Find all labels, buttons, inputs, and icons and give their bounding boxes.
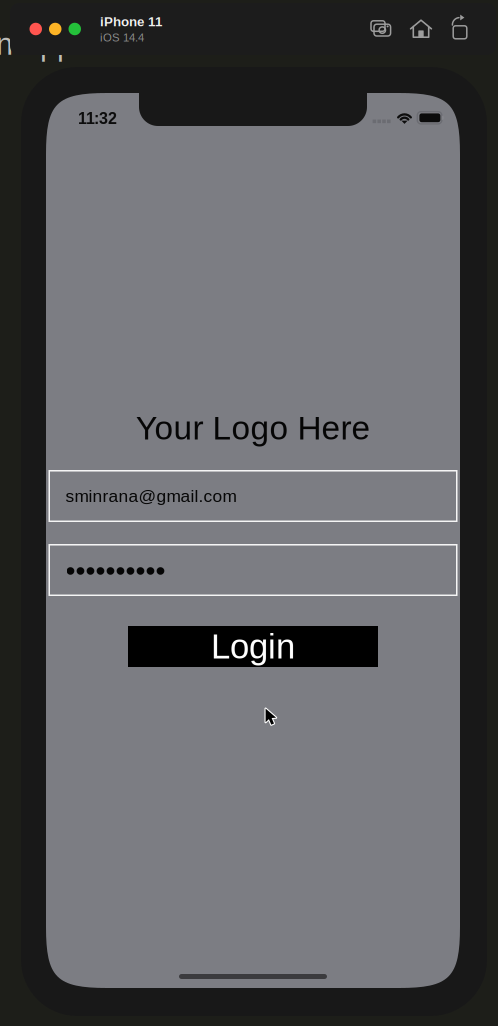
button[interactable]: Minimize window [49, 23, 61, 35]
button[interactable]: •••••••••• [48, 544, 457, 596]
staticText: Your Logo Here [135, 409, 370, 447]
button[interactable]: Rotate Device [448, 17, 472, 41]
staticText: 11:32 [78, 109, 117, 127]
button[interactable]: Login [128, 626, 378, 667]
staticText: iOS 14.4 [100, 31, 144, 44]
staticText: iPhone 11 [100, 14, 162, 29]
staticText: Login App in Swift [0, 27, 183, 61]
button[interactable]: Take Screenshot [370, 17, 394, 41]
button[interactable]: sminrana@gmail.com [48, 470, 457, 522]
button[interactable]: Close window [29, 23, 42, 35]
button[interactable]: Home [409, 17, 433, 41]
button[interactable]: Zoom window [68, 23, 81, 35]
staticText: sminrana@gmail.com [65, 486, 236, 506]
staticText: Login [211, 627, 295, 666]
staticText: •••••••••• [65, 554, 165, 586]
